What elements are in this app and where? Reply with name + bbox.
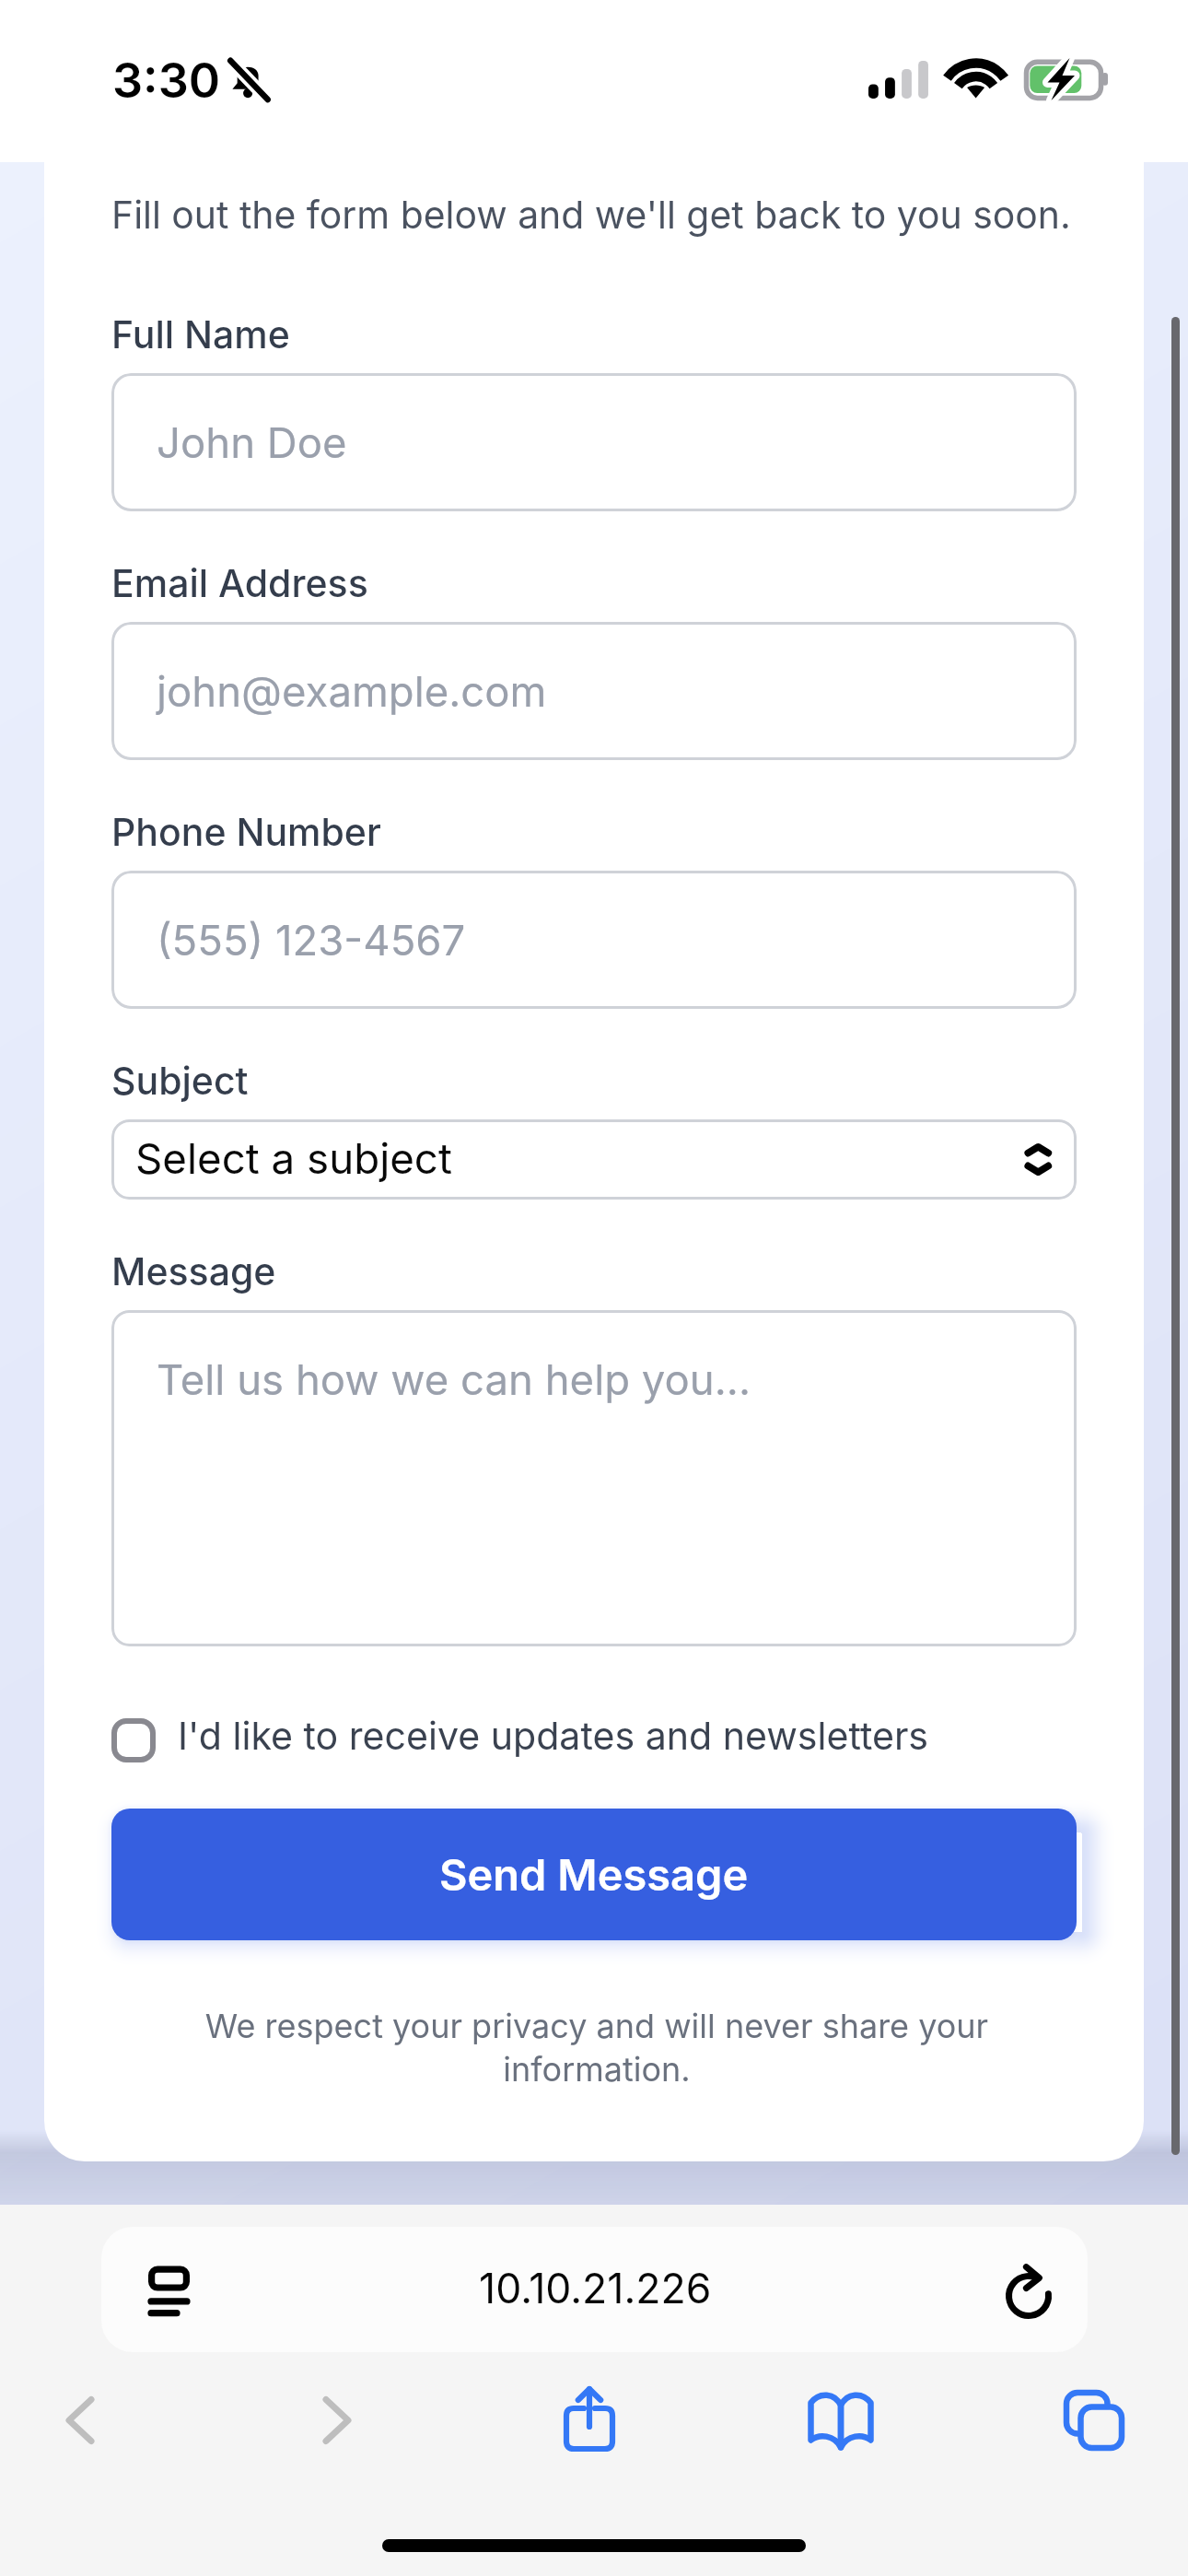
- staticText: Phone Number: [111, 809, 381, 855]
- staticText: Full Name: [111, 311, 290, 357]
- button[interactable]: [111, 622, 1077, 760]
- staticText: Email Address: [111, 560, 368, 606]
- staticText: john@example.com: [157, 666, 547, 717]
- button[interactable]: [111, 1310, 1077, 1646]
- other: Reload: [1005, 2264, 1053, 2312]
- button[interactable]: [101, 2227, 1088, 2352]
- staticText: Fill out the form below and we'll get ba…: [111, 192, 1106, 237]
- staticText: Subject: [111, 1058, 249, 1104]
- staticText: Select a subject: [135, 1133, 452, 1184]
- button[interactable]: Bookmarks: [784, 2363, 898, 2477]
- staticText: I'd like to receive updates and newslett…: [178, 1713, 929, 1759]
- staticText: (555) 123-4567: [157, 915, 466, 966]
- button[interactable]: [111, 373, 1077, 511]
- staticText: Message: [111, 1248, 276, 1294]
- staticText: Tell us how we can help you...: [157, 1354, 751, 1405]
- staticText: John Doe: [157, 417, 347, 468]
- button[interactable]: [111, 871, 1077, 1009]
- staticText: 3:30: [112, 52, 221, 110]
- button[interactable]: Forward: [280, 2363, 394, 2477]
- button[interactable]: Tabs: [1037, 2363, 1151, 2477]
- staticText: 10.10.21.226: [479, 2264, 712, 2313]
- staticText: We respect your privacy and will never s…: [157, 2006, 1036, 2089]
- button[interactable]: Share: [532, 2363, 646, 2477]
- button[interactable]: [111, 1715, 940, 1765]
- button[interactable]: Back: [23, 2363, 137, 2477]
- other: Page settings: [144, 2261, 194, 2322]
- button[interactable]: [111, 1119, 1077, 1200]
- button[interactable]: Send Message: [111, 1809, 1077, 1940]
- staticText: Send Message: [439, 1848, 749, 1901]
